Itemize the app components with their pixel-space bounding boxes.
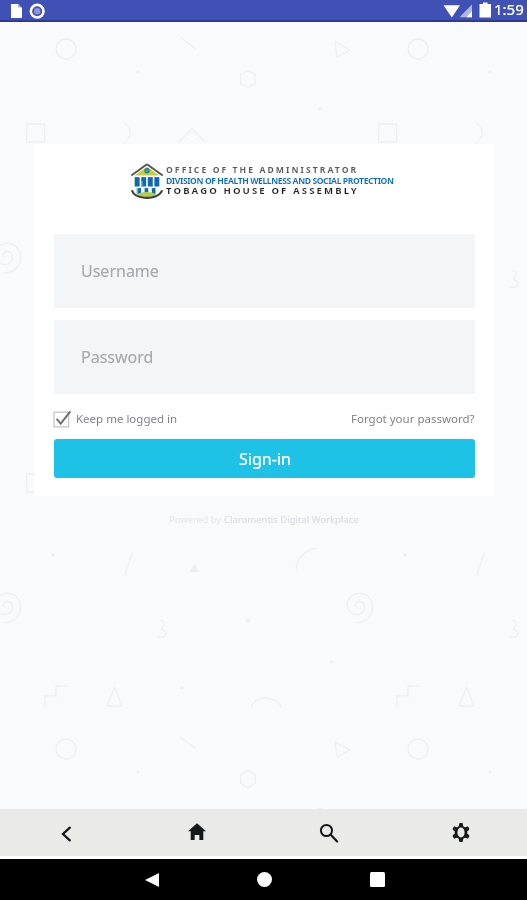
button[interactable]: Keep me logged in (54, 408, 178, 430)
button[interactable]: Recents (356, 859, 398, 900)
staticText: Sign-in (239, 448, 291, 470)
button[interactable]: Settings (395, 809, 527, 856)
staticText: OFFICE OF THE ADMINISTRATOR (166, 164, 359, 176)
button[interactable]: Password (54, 320, 475, 394)
button[interactable]: Home (131, 809, 263, 856)
button[interactable]: Username (54, 234, 475, 308)
button[interactable]: Search (263, 809, 395, 856)
staticText: 1:59 (494, 0, 524, 19)
staticText: DIVISION OF HEALTH WELLNESS AND SOCIAL P… (166, 175, 394, 187)
staticText: Password (81, 346, 154, 368)
staticText: Keep me logged in (76, 411, 178, 427)
button[interactable]: Sign-in (54, 439, 475, 478)
staticText: Claromentis Digital Workplace (224, 513, 359, 526)
button[interactable]: Back (0, 809, 131, 856)
staticText: TOBAGO HOUSE OF ASSEMBLY (166, 184, 359, 197)
button[interactable]: Forgot your password? (351, 411, 475, 427)
staticText: Username (81, 260, 159, 282)
button[interactable]: Home (243, 859, 285, 900)
button[interactable]: Back (131, 859, 173, 900)
staticText: Powered by (169, 513, 224, 526)
